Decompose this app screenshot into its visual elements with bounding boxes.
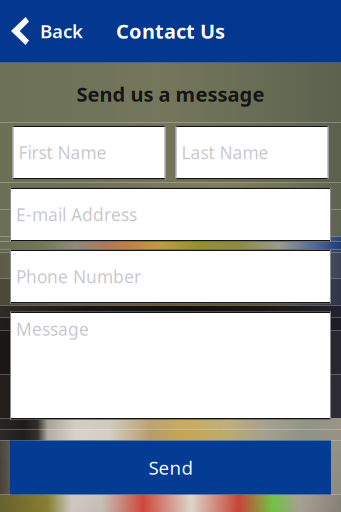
staticText: Message xyxy=(16,317,89,340)
staticText: Send xyxy=(148,455,192,480)
staticText: E-mail Address xyxy=(16,203,137,226)
button[interactable]: Back xyxy=(0,0,93,62)
staticText: Last Name xyxy=(181,141,268,164)
button[interactable]: Send xyxy=(10,440,331,494)
staticText: Back xyxy=(40,19,83,43)
staticText: Phone Number xyxy=(16,265,141,288)
staticText: Contact Us xyxy=(116,18,225,44)
staticText: First Name xyxy=(18,141,106,164)
staticText: Send us a message xyxy=(76,81,264,107)
